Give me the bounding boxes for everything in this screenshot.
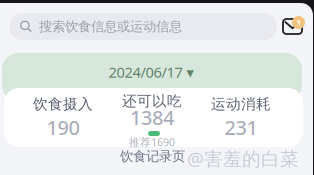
staticText: 1	[296, 16, 301, 29]
staticText: 饮食摄入	[33, 95, 93, 113]
staticText: 231	[224, 114, 257, 141]
staticText: 推荐1690	[129, 135, 175, 149]
button[interactable]: 2024/06/17 ▾	[96, 63, 206, 81]
staticText: 还可以吃	[122, 92, 182, 110]
button[interactable]: 消息	[283, 15, 308, 38]
staticText: 1384	[130, 104, 174, 131]
staticText: 饮食记录页	[120, 148, 185, 164]
staticText: 190	[46, 114, 79, 141]
staticText: 运动消耗	[211, 95, 271, 113]
staticText: @害羞的白菜	[187, 146, 299, 171]
button[interactable]: 搜索饮食信息或运动信息	[9, 13, 277, 40]
staticText: 2024/06/17 ▾	[108, 62, 193, 82]
staticText: 搜索饮食信息或运动信息	[39, 18, 182, 35]
